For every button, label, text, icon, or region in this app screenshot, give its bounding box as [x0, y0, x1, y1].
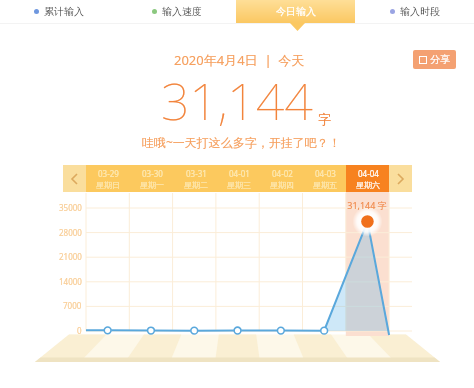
staticText: 04-01: [229, 168, 250, 179]
staticText: 7000: [63, 300, 82, 311]
staticText: 31,144: [161, 67, 313, 135]
staticText: 14000: [59, 276, 82, 287]
staticText: 哇哦~一天打这么多字，开挂了吧？！: [142, 134, 341, 150]
staticText: 04-03: [315, 168, 336, 179]
button[interactable]: 04-04: [346, 165, 389, 192]
staticText: 星期二: [184, 180, 208, 190]
staticText: 字: [318, 111, 331, 127]
button[interactable]: Next week: [389, 165, 412, 192]
staticText: 03-29: [98, 168, 119, 179]
button[interactable]: 04-01: [217, 165, 260, 192]
staticText: 今日输入: [276, 5, 316, 18]
staticText: 星期四: [270, 180, 294, 190]
button[interactable]: 今日输入: [236, 0, 355, 23]
staticText: 28000: [59, 227, 82, 238]
button[interactable]: 04-03: [303, 165, 346, 192]
staticText: 星期六: [356, 180, 380, 190]
staticText: 星期日: [96, 180, 120, 190]
staticText: 分享: [430, 53, 450, 66]
staticText: 累计输入: [44, 5, 84, 18]
staticText: 输入速度: [162, 5, 202, 18]
staticText: 03-31: [186, 168, 207, 179]
staticText: 21000: [59, 251, 82, 262]
staticText: 04-02: [272, 168, 293, 179]
button[interactable]: 03-31: [174, 165, 217, 192]
button[interactable]: 03-30: [130, 165, 174, 192]
staticText: 03-30: [142, 168, 163, 179]
staticText: 31,144 字: [347, 199, 387, 211]
staticText: 星期一: [140, 180, 164, 190]
staticText: 输入时段: [400, 5, 440, 18]
button[interactable]: 输入速度: [118, 0, 236, 23]
button[interactable]: 04-02: [260, 165, 303, 192]
staticText: 星期三: [227, 180, 251, 190]
staticText: 35000: [59, 202, 82, 213]
button[interactable]: 累计输入: [0, 0, 118, 23]
staticText: 04-04: [358, 168, 379, 179]
button[interactable]: 输入时段: [355, 0, 474, 23]
button[interactable]: Previous week: [63, 165, 86, 192]
staticText: 0: [77, 325, 82, 336]
button[interactable]: 分享: [413, 50, 456, 69]
button[interactable]: 03-29: [86, 165, 130, 192]
staticText: 星期五: [313, 180, 337, 190]
staticText: 2020年4月4日 | 今天: [174, 51, 305, 69]
